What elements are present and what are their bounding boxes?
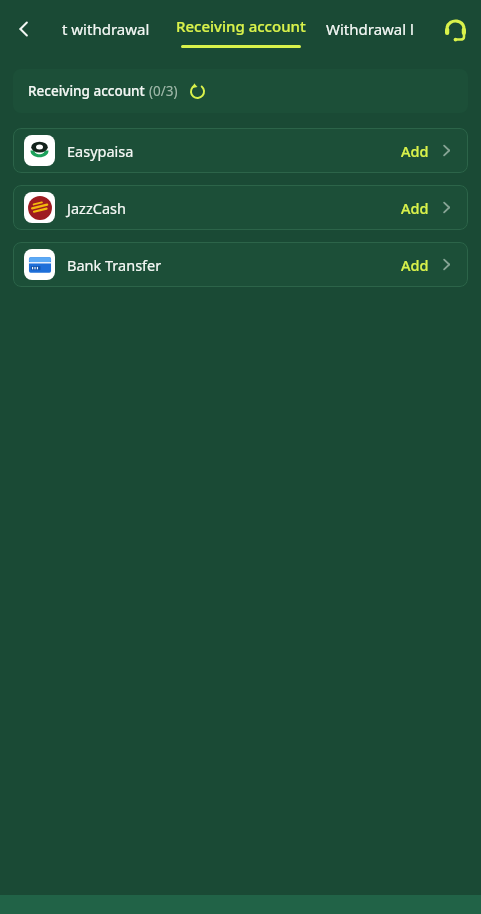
button[interactable]: t withdrawal	[46, 0, 166, 57]
staticText: Withdrawal l	[326, 19, 414, 39]
staticText: Add	[401, 198, 429, 218]
button[interactable]: JazzCash	[13, 185, 468, 230]
button[interactable]: Refresh	[187, 81, 207, 101]
staticText: Add	[401, 141, 429, 161]
button[interactable]: Customer support	[435, 9, 475, 49]
staticText: JazzCash	[67, 198, 126, 218]
staticText: Easypaisa	[67, 141, 134, 161]
button[interactable]: Easypaisa	[13, 128, 468, 173]
staticText: Bank Transfer	[67, 255, 162, 275]
staticText: Receiving account	[28, 82, 149, 100]
staticText: (0/3)	[149, 82, 178, 100]
button[interactable]: Back	[6, 11, 42, 47]
button[interactable]: Bank Transfer	[13, 242, 468, 287]
button[interactable]: Receiving account	[13, 69, 468, 113]
staticText: Add	[401, 255, 429, 275]
button[interactable]: Withdrawal l	[326, 0, 428, 57]
button[interactable]: Receiving account	[168, 0, 314, 57]
staticText: t withdrawal	[62, 19, 150, 39]
staticText: Receiving account	[176, 16, 306, 36]
